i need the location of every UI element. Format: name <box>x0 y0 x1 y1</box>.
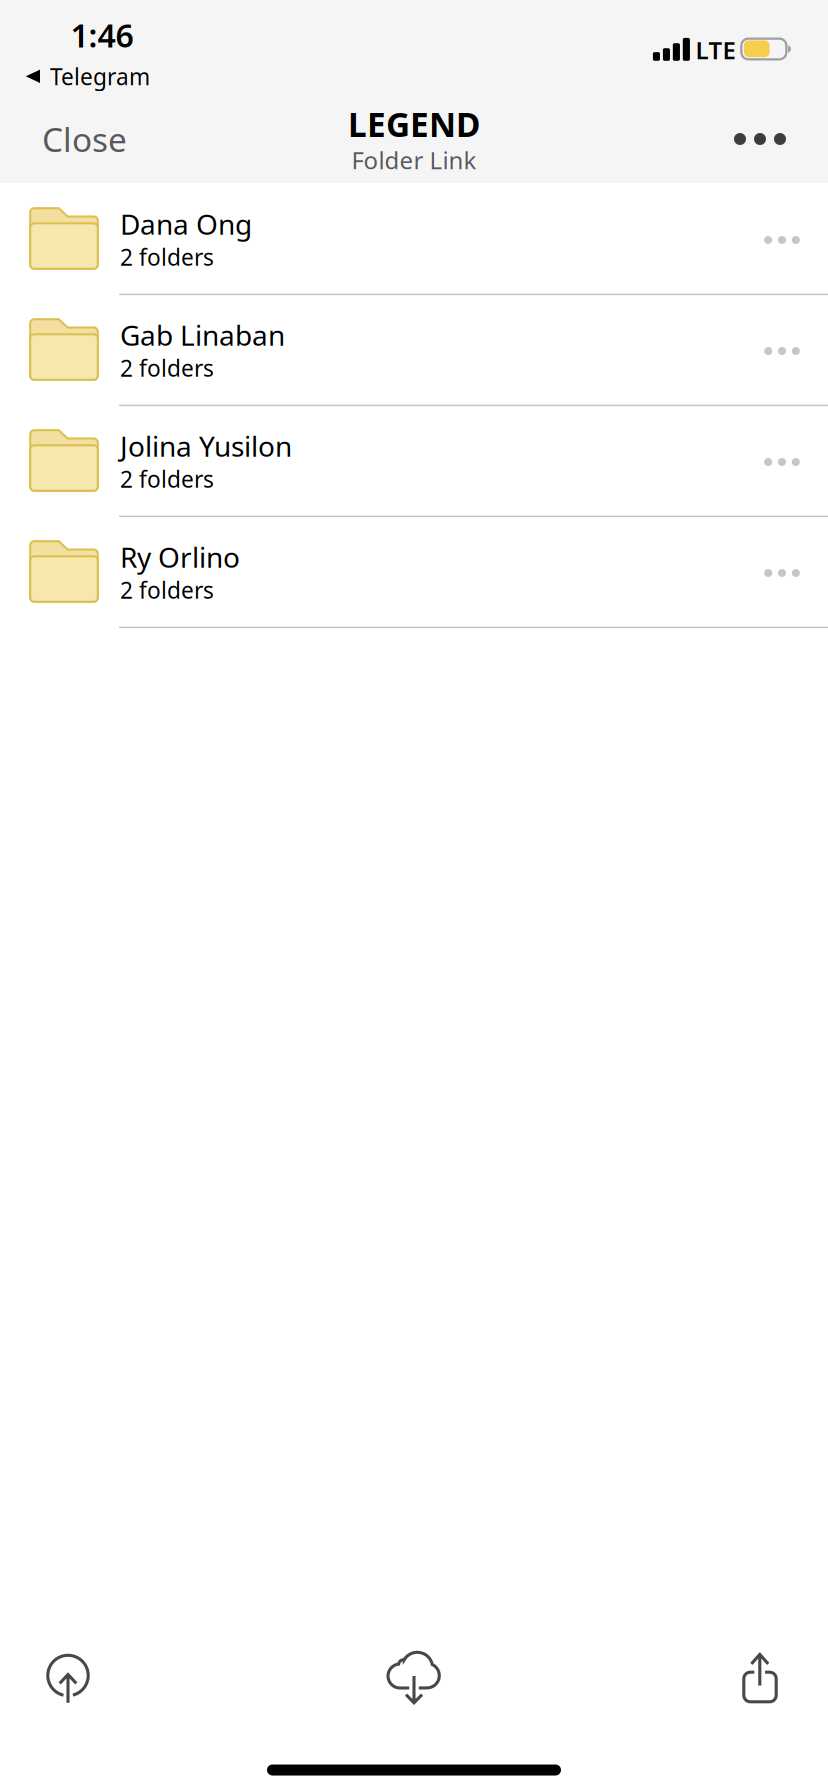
button[interactable]: More options <box>705 104 815 174</box>
staticText: Jolina Yusilon <box>120 427 292 465</box>
staticText: Folder Link <box>351 144 476 176</box>
button[interactable]: Import to Cloud Drive <box>8 1633 128 1729</box>
staticText: Telegram <box>50 61 150 91</box>
staticText: 1:46 <box>70 14 133 56</box>
button[interactable]: Jolina Yusilon <box>0 405 828 516</box>
staticText: LTE <box>695 34 735 66</box>
staticText: Close <box>42 117 127 161</box>
button[interactable]: Close <box>42 104 162 174</box>
staticText: Ry Orlino <box>120 538 240 576</box>
button[interactable]: Gab Linaban <box>0 294 828 405</box>
button[interactable]: Download <box>354 1630 474 1726</box>
staticText: Dana Ong <box>120 205 252 243</box>
button[interactable]: Dana Ong <box>0 183 828 294</box>
staticText: 2 folders <box>120 242 214 272</box>
staticText: 2 folders <box>120 575 214 605</box>
staticText: Gab Linaban <box>120 316 285 354</box>
staticText: 2 folders <box>120 353 214 383</box>
button[interactable]: Ry Orlino <box>0 516 828 627</box>
staticText: 2 folders <box>120 464 214 494</box>
button[interactable]: Share link <box>700 1630 820 1726</box>
staticText: LEGEND <box>348 102 480 146</box>
